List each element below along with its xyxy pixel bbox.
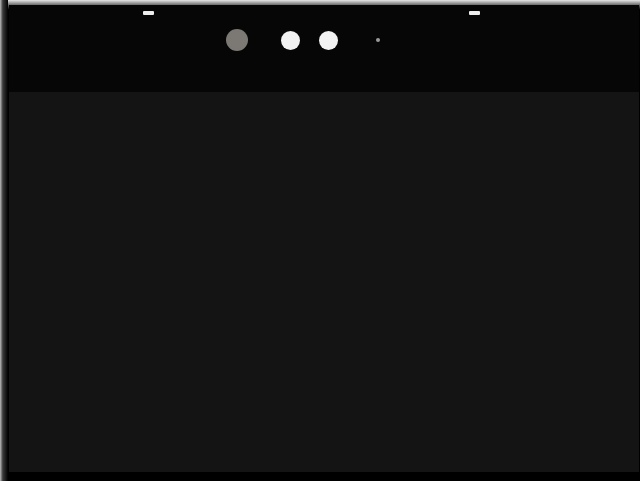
button[interactable]: Page indicators (226, 29, 380, 51)
